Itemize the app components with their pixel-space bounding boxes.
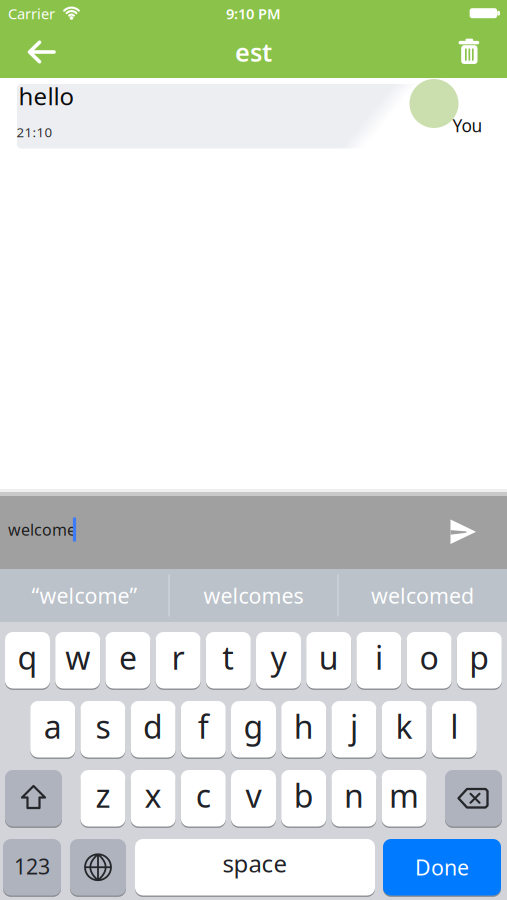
- button[interactable]: space: [135, 839, 375, 895]
- button[interactable]: u: [306, 632, 351, 688]
- button[interactable]: Back: [16, 32, 66, 72]
- button[interactable]: t: [206, 632, 251, 688]
- staticText: t: [222, 636, 234, 678]
- staticText: welcome: [8, 519, 76, 540]
- button[interactable]: Send: [435, 503, 491, 559]
- button[interactable]: Done: [383, 839, 501, 895]
- staticText: w: [65, 636, 90, 678]
- staticText: j: [350, 705, 358, 747]
- staticText: welcomes: [203, 581, 303, 610]
- staticText: est: [235, 35, 272, 69]
- button[interactable]: p: [457, 632, 502, 688]
- button[interactable]: Delete chat: [447, 31, 491, 71]
- button[interactable]: s: [80, 701, 125, 757]
- button[interactable]: Delete: [445, 770, 502, 826]
- staticText: e: [119, 636, 137, 678]
- staticText: “welcome”: [31, 581, 137, 610]
- button[interactable]: j: [331, 701, 376, 757]
- staticText: h: [294, 705, 314, 747]
- staticText: m: [389, 774, 419, 816]
- staticText: k: [396, 705, 413, 747]
- staticText: p: [469, 636, 489, 678]
- staticText: q: [17, 636, 37, 678]
- staticText: l: [450, 705, 458, 747]
- staticText: space: [222, 847, 287, 879]
- button[interactable]: v: [231, 770, 276, 826]
- button[interactable]: w: [55, 632, 100, 688]
- staticText: u: [319, 636, 339, 678]
- button[interactable]: g: [231, 701, 276, 757]
- staticText: g: [243, 705, 263, 747]
- staticText: o: [420, 636, 439, 678]
- button[interactable]: welcomes: [169, 569, 337, 622]
- staticText: 21:10: [16, 123, 52, 141]
- button[interactable]: b: [281, 770, 326, 826]
- button[interactable]: x: [131, 770, 176, 826]
- staticText: b: [294, 774, 314, 816]
- staticText: n: [344, 774, 364, 816]
- staticText: d: [143, 705, 163, 747]
- staticText: Carrier: [8, 4, 55, 23]
- staticText: welcomed: [371, 581, 474, 610]
- button[interactable]: k: [382, 701, 427, 757]
- button[interactable]: Shift: [5, 770, 62, 826]
- button[interactable]: q: [5, 632, 50, 688]
- button[interactable]: o: [407, 632, 452, 688]
- staticText: z: [95, 774, 110, 816]
- button[interactable]: f: [181, 701, 226, 757]
- button[interactable]: welcomed: [338, 569, 506, 622]
- button[interactable]: y: [256, 632, 301, 688]
- button[interactable]: d: [131, 701, 176, 757]
- button[interactable]: Numbers: [3, 839, 61, 895]
- button[interactable]: m: [382, 770, 427, 826]
- button[interactable]: r: [156, 632, 201, 688]
- staticText: Done: [415, 853, 469, 881]
- staticText: x: [145, 774, 162, 816]
- staticText: f: [198, 705, 209, 747]
- button[interactable]: l: [432, 701, 477, 757]
- staticText: v: [245, 774, 261, 816]
- button[interactable]: e: [105, 632, 150, 688]
- staticText: 123: [14, 852, 50, 880]
- button[interactable]: c: [181, 770, 226, 826]
- staticText: 9:10 PM: [226, 4, 281, 23]
- button[interactable]: a: [30, 701, 75, 757]
- button[interactable]: “welcome”: [0, 569, 168, 622]
- staticText: c: [196, 774, 211, 816]
- button[interactable]: n: [331, 770, 376, 826]
- staticText: hello: [18, 80, 74, 112]
- button[interactable]: i: [356, 632, 401, 688]
- staticText: s: [95, 705, 110, 747]
- staticText: a: [44, 705, 62, 747]
- staticText: You: [452, 114, 482, 137]
- staticText: y: [270, 636, 286, 678]
- button[interactable]: z: [80, 770, 125, 826]
- staticText: r: [172, 636, 185, 678]
- button[interactable]: Next keyboard: [70, 839, 126, 895]
- button[interactable]: h: [281, 701, 326, 757]
- staticText: i: [375, 636, 383, 678]
